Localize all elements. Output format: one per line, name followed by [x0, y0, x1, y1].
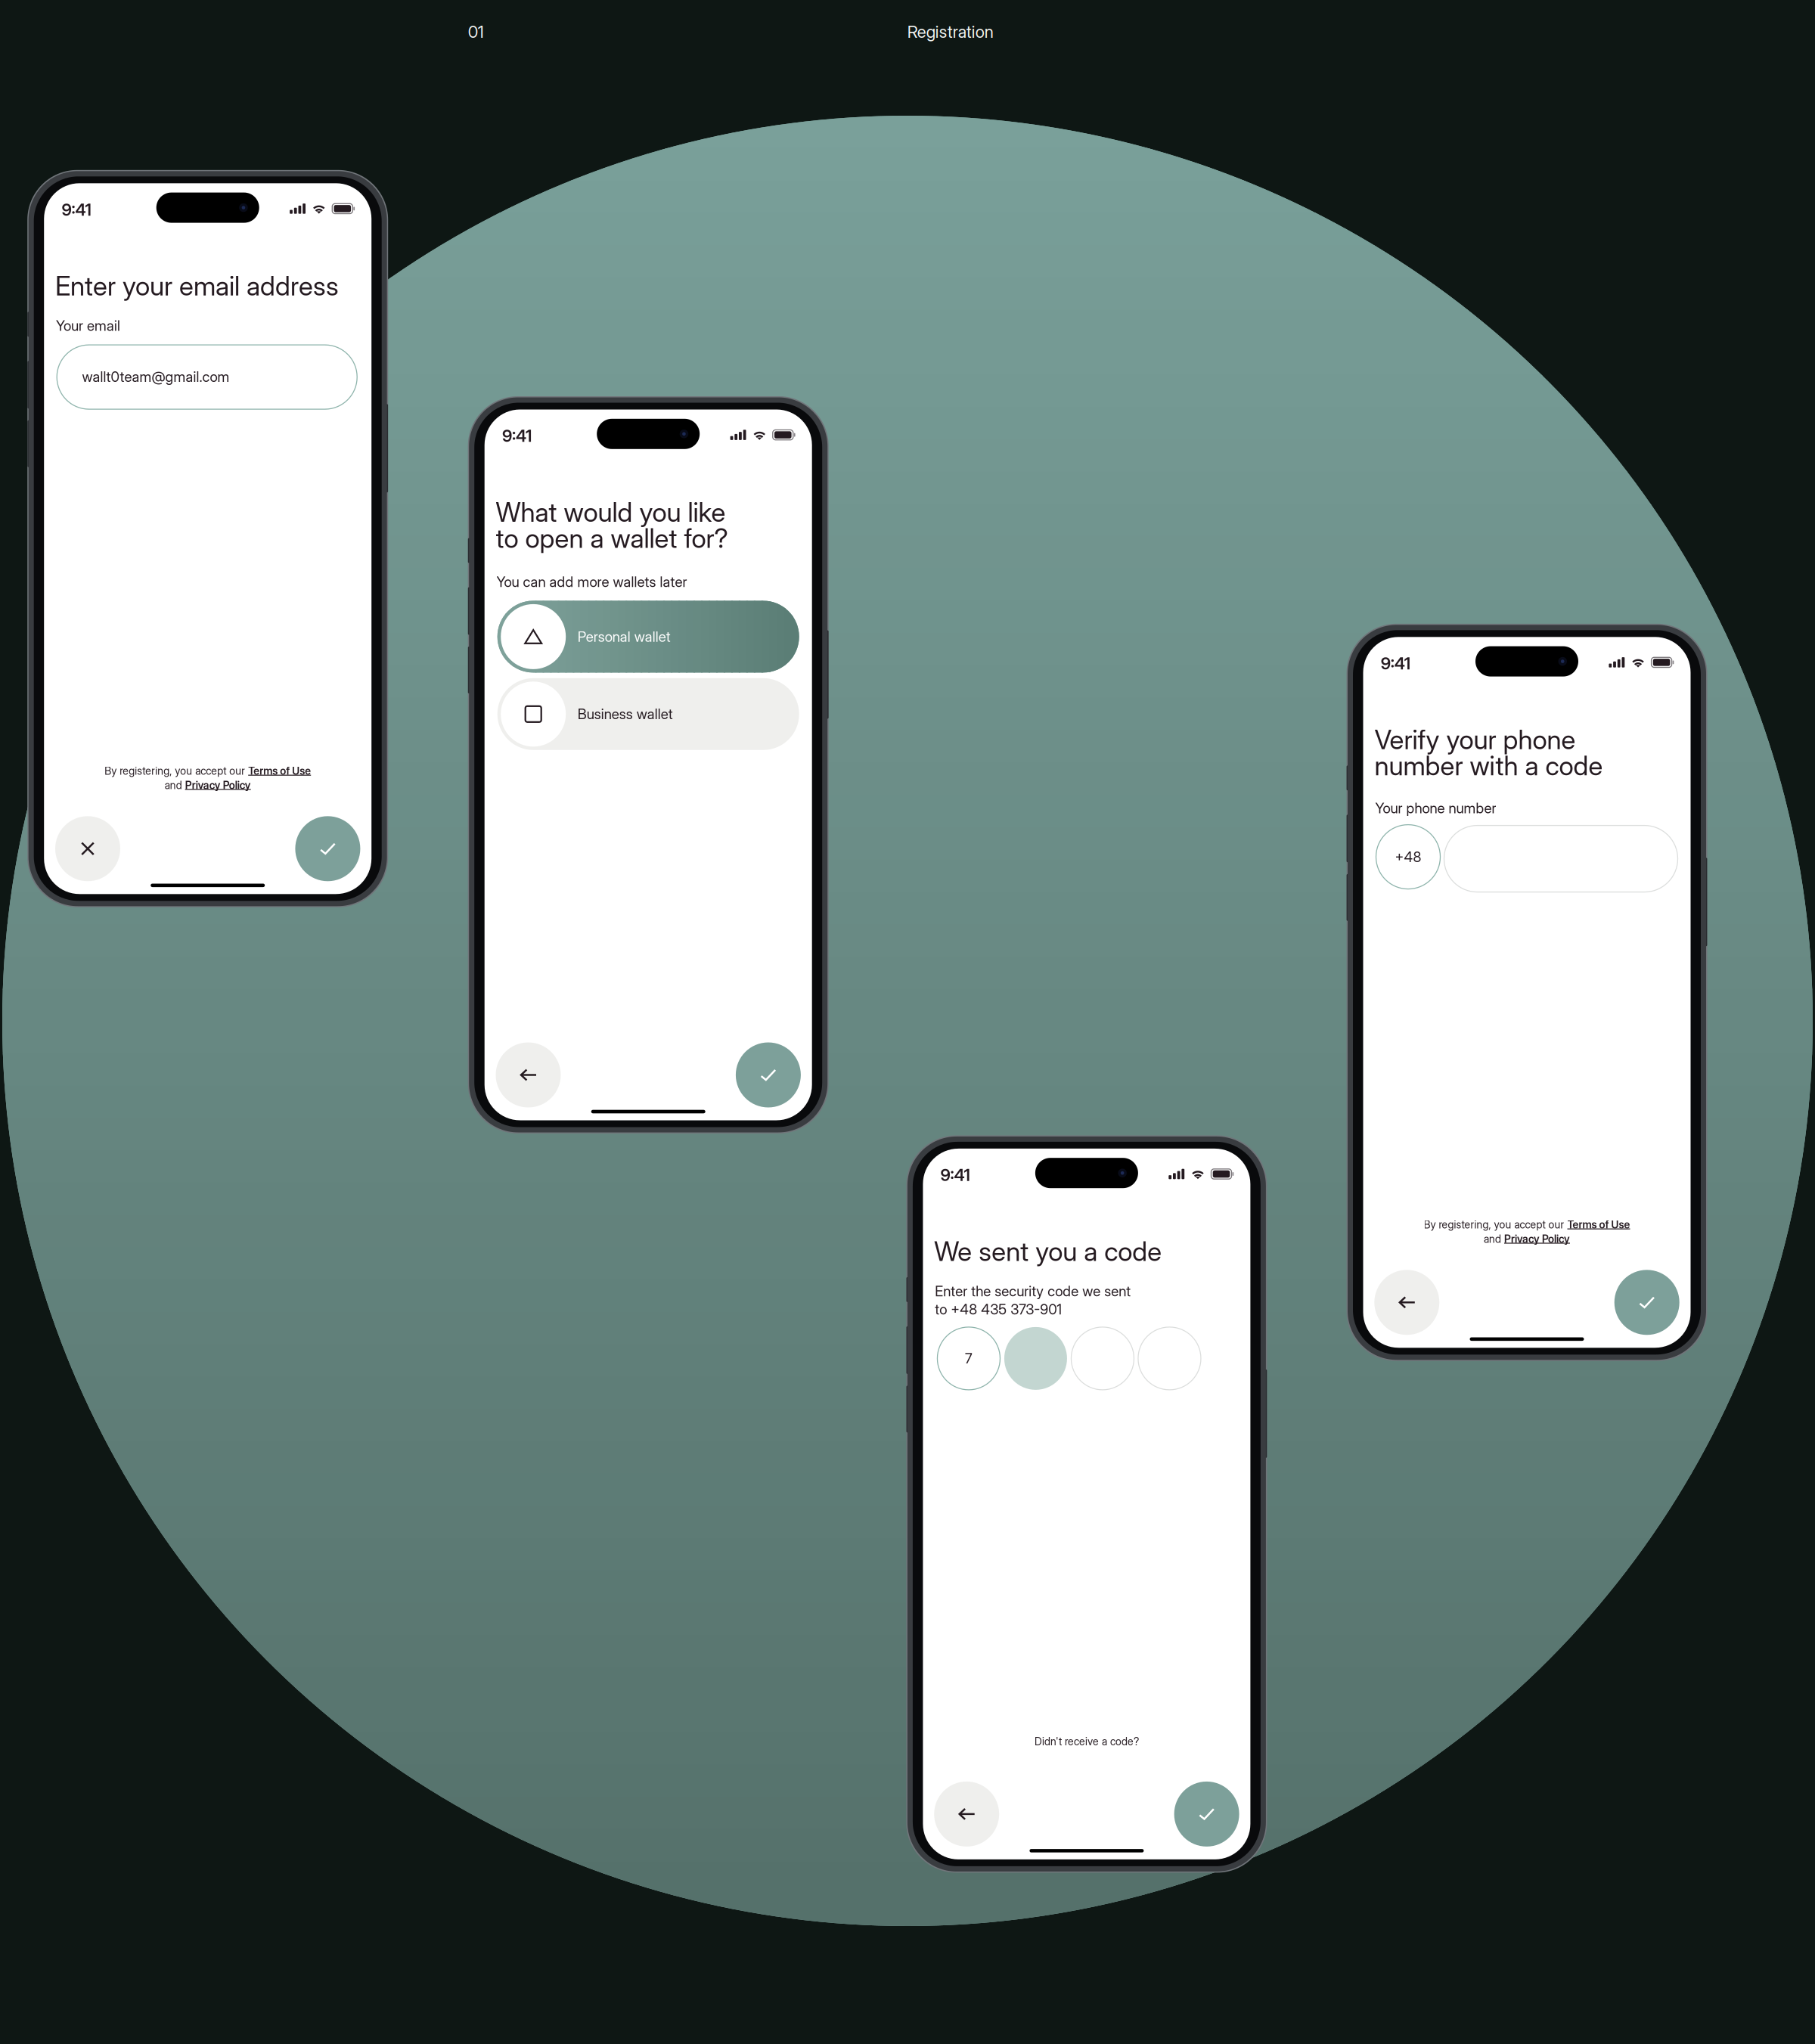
button[interactable]: Privacy Policy	[185, 779, 251, 792]
staticText: Enter the security code we sent	[935, 1283, 1131, 1300]
button[interactable]: Continue	[1614, 1270, 1679, 1335]
staticText: Enter your email address	[55, 270, 339, 302]
staticText: to +48 435 373-901	[935, 1301, 1062, 1318]
button[interactable]: Privacy Policy	[1504, 1232, 1570, 1245]
staticText: Personal wallet	[578, 628, 671, 645]
staticText: and	[165, 779, 185, 792]
button[interactable]: Terms of Use	[1567, 1218, 1630, 1231]
staticText: We sent you a code	[934, 1235, 1162, 1267]
staticText: 7	[965, 1350, 973, 1367]
button[interactable]: Personal wallet	[497, 601, 799, 673]
staticText: 9:41	[62, 199, 91, 220]
staticText: Your phone number	[1375, 800, 1496, 817]
button[interactable]: Terms of Use	[248, 765, 311, 777]
staticText: Terms of Use	[248, 765, 311, 777]
staticText: By registering, you accept our	[1424, 1218, 1567, 1231]
button[interactable]: Continue	[1174, 1782, 1239, 1847]
staticText: and	[1484, 1232, 1504, 1245]
staticText: By registering, you accept our	[105, 765, 248, 777]
staticText: Terms of Use	[1567, 1218, 1630, 1231]
staticText: number with a code	[1374, 750, 1603, 782]
button[interactable]: Back	[934, 1782, 999, 1847]
button[interactable]: Continue	[736, 1042, 801, 1107]
staticText: 9:41	[1381, 653, 1410, 673]
button[interactable]: wallt0team@gmail.com	[57, 345, 357, 409]
button[interactable]: Back	[1374, 1270, 1439, 1335]
button[interactable]: Continue	[295, 816, 360, 881]
staticText: Your email	[56, 317, 120, 334]
staticText: Verify your phone	[1374, 724, 1576, 756]
button[interactable]: Back	[496, 1042, 561, 1107]
staticText: Didn't receive a code?	[1034, 1735, 1139, 1748]
staticText: wallt0team@gmail.com	[82, 368, 230, 385]
staticText: Privacy Policy	[185, 779, 251, 792]
staticText: You can add more wallets later	[497, 573, 687, 590]
staticText: Registration	[907, 22, 993, 42]
staticText: Privacy Policy	[1504, 1232, 1570, 1245]
staticText: +48	[1395, 848, 1421, 865]
staticText: 9:41	[502, 426, 532, 446]
staticText: What would you like	[496, 496, 726, 528]
staticText: to open a wallet for?	[496, 522, 728, 554]
staticText: Business wallet	[578, 706, 673, 723]
staticText: 9:41	[940, 1165, 970, 1185]
button[interactable]: Business wallet	[497, 678, 799, 750]
staticText: 01	[468, 22, 484, 42]
button[interactable]: Cancel	[55, 816, 120, 881]
button[interactable]: Didn't receive a code?	[1026, 1733, 1147, 1750]
